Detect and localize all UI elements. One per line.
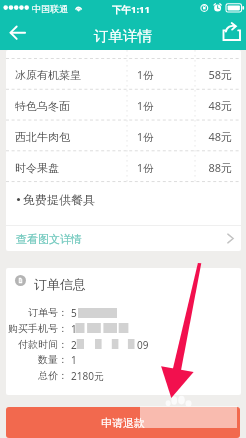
staticText: 1份 [137,99,195,113]
button[interactable]: 冰原有机菜皇 [6,59,241,90]
button[interactable]: 西北牛肉包 [6,121,241,152]
staticText: 1份 [137,68,195,82]
staticText: 订单详情 [94,27,152,45]
button[interactable]: 申请退款 [6,407,240,438]
staticText: 付款时间： [6,338,68,351]
staticText: 1份 [137,130,195,144]
staticText: 48元 [195,98,232,113]
staticText: 购买手机号： [6,322,68,335]
staticText: 申请退款 [101,416,145,430]
staticText: 09 [137,338,149,352]
staticText: 订单号： [6,306,68,319]
staticText: 时令果盘 [15,161,127,175]
staticText: 数量： [6,353,68,366]
staticText: 1 [71,353,77,367]
staticText: 58元 [195,67,232,82]
staticText: 西北牛肉包 [15,130,127,144]
button[interactable]: 查看图文详情 [6,226,241,251]
staticText: 冰原有机菜皇 [15,68,127,82]
staticText: 1份 [137,161,195,175]
staticText: 总价： [6,369,68,382]
staticText: 查看图文详情 [16,232,82,246]
staticText: 特色乌冬面 [15,99,127,113]
staticText: 2 [71,338,77,352]
button[interactable]: 特色乌冬面 [6,90,241,121]
staticText: 88元 [195,160,232,175]
staticText: 5 [71,306,77,320]
button[interactable]: 免费提供餐具 [6,183,241,225]
button[interactable]: Back [4,18,32,50]
staticText: 中国联通 [32,3,68,14]
staticText: 1 [71,322,77,336]
button[interactable]: 时令果盘 [6,152,241,183]
button[interactable]: Share [216,18,246,50]
staticText: 订单信息 [34,276,86,292]
staticText: 2180元 [71,369,104,383]
staticText: 48元 [195,129,232,144]
staticText: 下午1:11 [112,3,150,16]
staticText: 免费提供餐具 [23,192,95,207]
